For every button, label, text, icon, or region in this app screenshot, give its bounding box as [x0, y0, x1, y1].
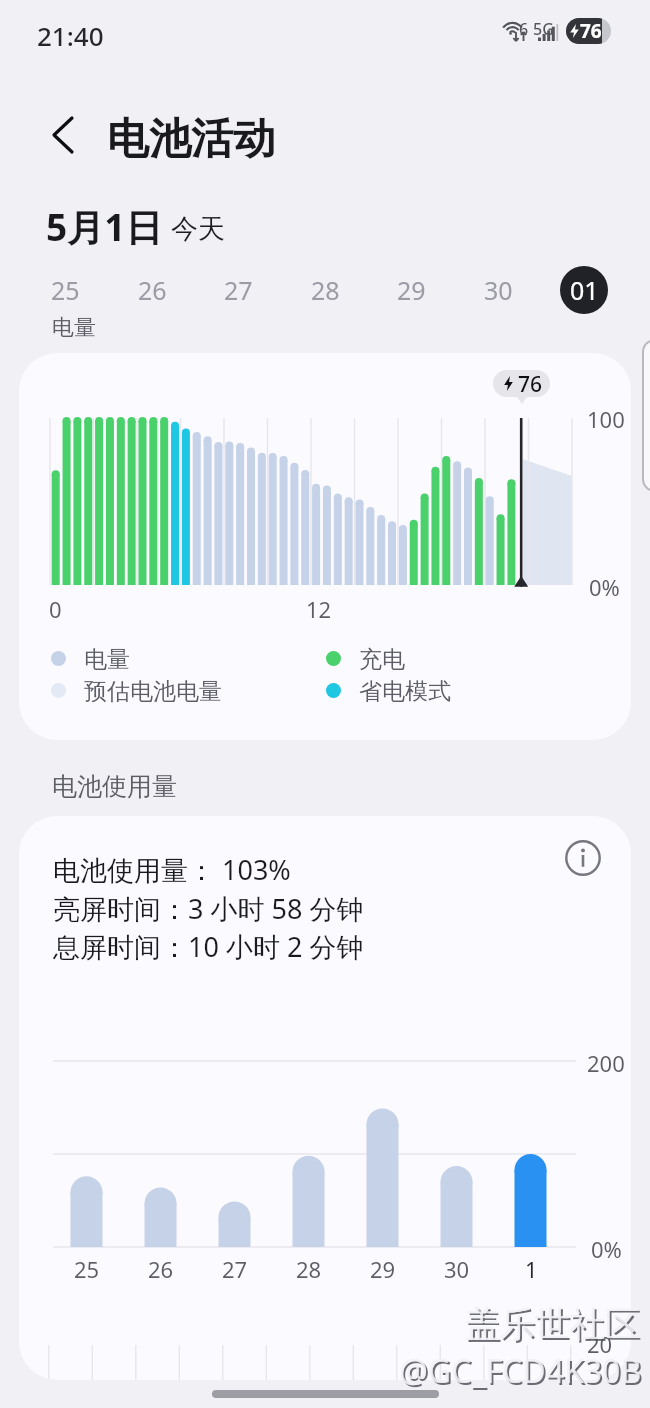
button[interactable]: 电量 — [51, 645, 130, 671]
staticText: 21:40 — [37, 18, 104, 53]
button[interactable]: Info — [559, 834, 607, 882]
staticText: 29 — [370, 1254, 396, 1284]
staticText: 26 — [138, 273, 167, 307]
staticText: 5月1日 — [46, 201, 163, 252]
button[interactable]: Back — [35, 105, 91, 165]
staticText: 省电模式 — [359, 677, 451, 703]
button[interactable]: 30 — [474, 266, 522, 314]
staticText: 6 — [519, 18, 529, 40]
button[interactable]: 01 — [560, 266, 608, 314]
staticText: 100 — [587, 404, 625, 434]
button[interactable]: 省电模式 — [326, 677, 451, 703]
staticText: 29 — [397, 273, 426, 307]
staticText: 76 — [518, 370, 543, 397]
staticText: 25 — [51, 273, 80, 307]
staticText: 01 — [570, 273, 599, 307]
staticText: 1 — [525, 1254, 538, 1284]
staticText: 亮屏时间：3 小时 58 分钟 — [53, 890, 364, 927]
staticText: @GC_FCD4K30B — [401, 1351, 644, 1395]
button[interactable]: 25 — [41, 266, 89, 314]
button[interactable]: 27 — [214, 266, 262, 314]
staticText: 电池活动 — [107, 113, 275, 166]
staticText: 27 — [224, 273, 253, 307]
staticText: 预估电池电量 — [84, 677, 222, 703]
staticText: 20 — [587, 1329, 613, 1359]
staticText: 76 — [580, 18, 602, 44]
staticText: 30 — [444, 1254, 470, 1284]
staticText: 盖乐世社区 — [465, 1302, 640, 1346]
staticText: @GC_FCD4K30B — [399, 1349, 642, 1393]
staticText: 息屏时间：10 小时 2 分钟 — [53, 928, 364, 965]
staticText: 电量 — [52, 314, 96, 342]
staticText: 30 — [484, 273, 513, 307]
staticText: 28 — [311, 273, 340, 307]
staticText: 0 — [49, 594, 62, 624]
button[interactable]: 29 — [387, 266, 435, 314]
staticText: 200 — [587, 1048, 625, 1078]
button[interactable]: 充电 — [326, 645, 405, 671]
button[interactable]: 预估电池电量 — [51, 677, 222, 703]
staticText: 电池使用量 — [52, 771, 177, 802]
staticText: 充电 — [359, 645, 405, 671]
staticText: 27 — [222, 1254, 248, 1284]
button[interactable]: 26 — [128, 266, 176, 314]
staticText: 26 — [148, 1254, 174, 1284]
button[interactable]: Edge panel — [644, 341, 650, 490]
button[interactable]: 28 — [301, 266, 349, 314]
staticText: 12 — [306, 594, 332, 624]
staticText: 0% — [589, 572, 620, 602]
staticText: 28 — [296, 1254, 322, 1284]
staticText: 5G — [533, 18, 554, 40]
staticText: 盖乐世社区 — [467, 1304, 642, 1348]
staticText: 0% — [591, 1234, 622, 1264]
staticText: 今天 — [171, 212, 225, 246]
staticText: 电量 — [84, 645, 130, 671]
staticText: 25 — [74, 1254, 100, 1284]
staticText: 电池使用量： 103% — [53, 851, 291, 888]
